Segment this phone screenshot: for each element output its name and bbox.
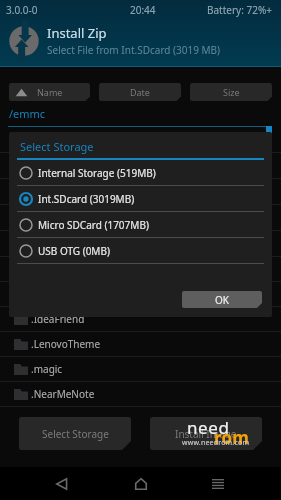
staticText: Int.SDcard (3019MB) [38,192,135,206]
staticText: .DataStorage [31,211,93,225]
button[interactable]: .gs_docs [0,282,281,307]
staticText: Install Image [175,427,237,441]
staticText: Select Storage [42,427,109,441]
staticText: Battery: 72%+ [207,3,272,17]
button[interactable]: .estrongs [0,231,281,257]
button[interactable]: .cache [0,179,281,205]
button[interactable]: Size [190,83,272,101]
button[interactable]: .IdeaFriend [0,307,281,332]
staticText: Select File from Int.SDcard (3019 MB) [47,43,221,57]
button[interactable]: OK [182,291,262,308]
staticText: .estrongs [31,237,75,251]
button[interactable]: .DataStorage [0,205,281,231]
button[interactable]: .Backups [0,153,281,179]
staticText: Size [223,86,240,98]
button[interactable]: Menu [195,467,241,500]
button[interactable]: .LenovoTheme [0,332,281,357]
button[interactable]: .NearMeNote [0,382,281,407]
button[interactable]: Home [118,467,164,500]
staticText: OK [215,293,229,307]
button[interactable]: Micro SDCard (1707MB) [9,212,272,238]
staticText: Name [37,86,63,98]
staticText: Date [130,86,150,98]
staticText: .magic [31,362,63,376]
button[interactable]: .face [0,257,281,282]
button[interactable]: Internal Storage (519MB) [9,160,272,186]
button[interactable]: Install Image [150,417,262,450]
staticText: need [187,416,230,439]
button[interactable]: Date [99,83,181,101]
staticText: Micro SDCard (1707MB) [38,218,149,232]
staticText: /emmc [9,106,46,121]
staticText: .LenovoTheme [31,337,101,351]
staticText: rom [214,426,250,449]
button[interactable]: .magic [0,357,281,382]
staticText: .android_secure [31,133,106,147]
staticText: .cache [31,185,61,199]
staticText: .face [31,262,54,276]
staticText: USB OTG (0MB) [38,244,110,258]
staticText: Internal Storage (519MB) [38,166,156,180]
button[interactable]: USB OTG (0MB) [9,238,272,264]
button[interactable]: Back [39,467,85,500]
staticText: Install Zip [47,24,107,42]
staticText: 20:44 [130,3,156,17]
button[interactable]: Name [9,83,90,101]
staticText: www.needrom.com [182,438,250,448]
staticText: Select Storage [20,139,94,154]
staticText: .NearMeNote [31,387,95,401]
staticText: 3.0.0-0 [6,3,38,17]
button[interactable]: Int.SDcard (3019MB) [9,186,272,212]
button[interactable]: .android_secure [0,127,281,153]
staticText: .Backups [31,159,74,173]
button[interactable]: Select Storage [19,417,131,450]
staticText: .IdeaFriend [31,312,85,326]
